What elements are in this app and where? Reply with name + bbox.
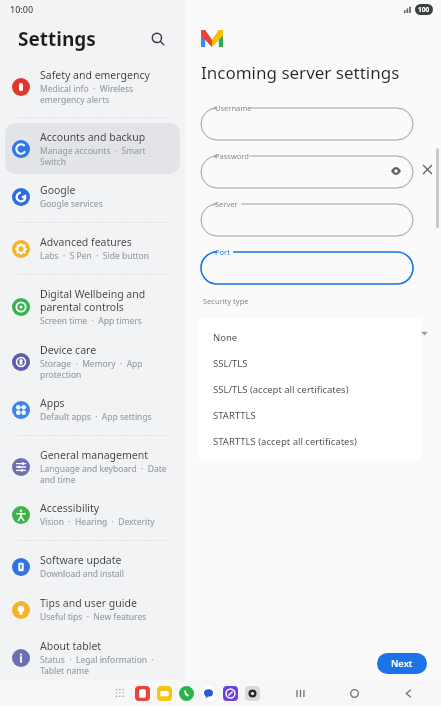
button[interactable]: Home	[345, 684, 363, 702]
staticText: Software update	[40, 553, 122, 567]
button[interactable]: Accounts and backup	[5, 123, 180, 174]
staticText: About tablet	[40, 639, 102, 653]
staticText: Server	[215, 199, 238, 209]
button[interactable]: Next	[377, 653, 427, 674]
button[interactable]: phone	[179, 686, 194, 701]
button[interactable]: camera	[245, 686, 260, 701]
staticText: Digital Wellbeing and parental controls	[40, 287, 172, 314]
staticText: Default apps · App settings	[40, 411, 152, 423]
button[interactable]: Clear	[413, 150, 441, 188]
staticText: Language and keyboard · Date and time	[40, 463, 172, 485]
button[interactable]: Digital Wellbeing and parental controls	[5, 280, 180, 334]
button[interactable]: Accessibility	[5, 494, 180, 535]
staticText: Labs · S Pen · Side button	[40, 250, 149, 262]
staticText: Medical info · Wireless emergency alerts	[40, 83, 172, 105]
staticText: STARTTLS (accept all certificates)	[213, 435, 357, 448]
staticText: None	[213, 331, 238, 344]
button[interactable]: STARTTLS	[199, 402, 421, 428]
staticText: Incoming server settings	[201, 61, 400, 84]
staticText: Screen time · App timers	[40, 315, 142, 327]
button[interactable]: Tips and user guide	[5, 589, 180, 630]
button[interactable]: About tablet	[5, 632, 180, 683]
button[interactable]: STARTTLS (accept all certificates)	[199, 428, 421, 454]
button[interactable]: messages	[201, 686, 216, 701]
button[interactable]: notes	[135, 686, 150, 701]
staticText: Storage · Memory · App protection	[40, 358, 172, 380]
button[interactable]: browser	[223, 686, 238, 701]
staticText: Password	[215, 151, 249, 161]
button[interactable]: Recents	[291, 684, 309, 702]
staticText: Apps	[40, 396, 65, 410]
staticText: Google services	[40, 198, 103, 210]
button[interactable]: files	[157, 686, 172, 701]
staticText: Advanced features	[40, 235, 132, 249]
staticText: Security type	[203, 296, 249, 306]
button[interactable]: SSL/TLS (accept all certificates)	[199, 376, 421, 402]
staticText: SSL/TLS (accept all certificates)	[213, 383, 349, 396]
staticText: Accessibility	[40, 501, 100, 515]
staticText: Port	[215, 247, 230, 257]
staticText: SSL/TLS	[213, 357, 248, 370]
staticText: Manage accounts · Smart Switch	[40, 145, 172, 167]
staticText: Useful tips · New features	[40, 611, 147, 623]
button[interactable]: All apps	[112, 685, 128, 701]
staticText: Username	[215, 103, 252, 113]
staticText: Next	[391, 657, 413, 670]
staticText: Device care	[40, 343, 97, 357]
button[interactable]: Expand security type	[417, 326, 431, 340]
button[interactable]: Software update	[5, 546, 180, 587]
button[interactable]: Apps	[5, 389, 180, 430]
staticText: Google	[40, 183, 76, 197]
staticText: Status · Legal information · Tablet name	[40, 654, 172, 676]
staticText: STARTTLS	[213, 409, 256, 422]
staticText: Accounts and backup	[40, 130, 146, 144]
button[interactable]: Google	[5, 176, 180, 217]
button[interactable]: General management	[5, 441, 180, 492]
staticText: Tips and user guide	[40, 596, 137, 610]
staticText: Download and install	[40, 568, 124, 580]
staticText: Settings	[18, 26, 96, 52]
staticText: General management	[40, 448, 148, 462]
button[interactable]: SSL/TLS	[199, 350, 421, 376]
button[interactable]: Advanced features	[5, 228, 180, 269]
staticText: 10:00	[10, 3, 34, 15]
button[interactable]: Device care	[5, 336, 180, 387]
staticText: 100	[418, 5, 430, 14]
button[interactable]: Search	[145, 26, 171, 52]
button[interactable]: None	[199, 324, 421, 350]
staticText: Safety and emergency	[40, 68, 150, 82]
button[interactable]: Safety and emergency	[5, 61, 180, 112]
button[interactable]: Back	[399, 684, 417, 702]
staticText: Vision · Hearing · Dexterity	[40, 516, 155, 528]
